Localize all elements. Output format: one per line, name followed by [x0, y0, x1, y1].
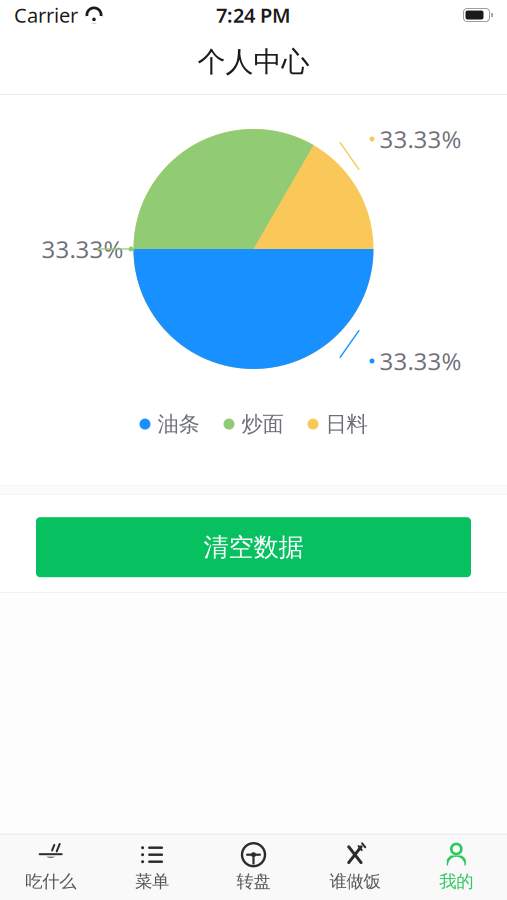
staticText: Carrier: [14, 2, 78, 28]
staticText: 日料: [325, 411, 367, 437]
staticText: 油条: [157, 411, 199, 437]
staticText: 个人中心: [197, 45, 309, 79]
button[interactable]: 谁做饭: [304, 835, 406, 900]
button[interactable]: 转盘: [203, 835, 304, 900]
staticText: 清空数据: [203, 532, 303, 563]
staticText: 菜单: [135, 871, 169, 892]
staticText: 转盘: [236, 871, 270, 892]
button[interactable]: 清空数据: [36, 517, 471, 577]
staticText: 33.33%: [41, 233, 123, 265]
staticText: 33.33%: [379, 123, 461, 155]
staticText: 我的: [439, 871, 473, 892]
button[interactable]: 吃什么: [0, 835, 101, 900]
staticText: 吃什么: [25, 871, 76, 892]
staticText: 33.33%: [379, 345, 461, 377]
button[interactable]: 我的: [406, 835, 507, 900]
staticText: 谁做饭: [329, 871, 380, 892]
button[interactable]: 菜单: [101, 835, 203, 900]
staticText: 炒面: [241, 411, 283, 437]
staticText: 7:24 PM: [216, 2, 291, 28]
